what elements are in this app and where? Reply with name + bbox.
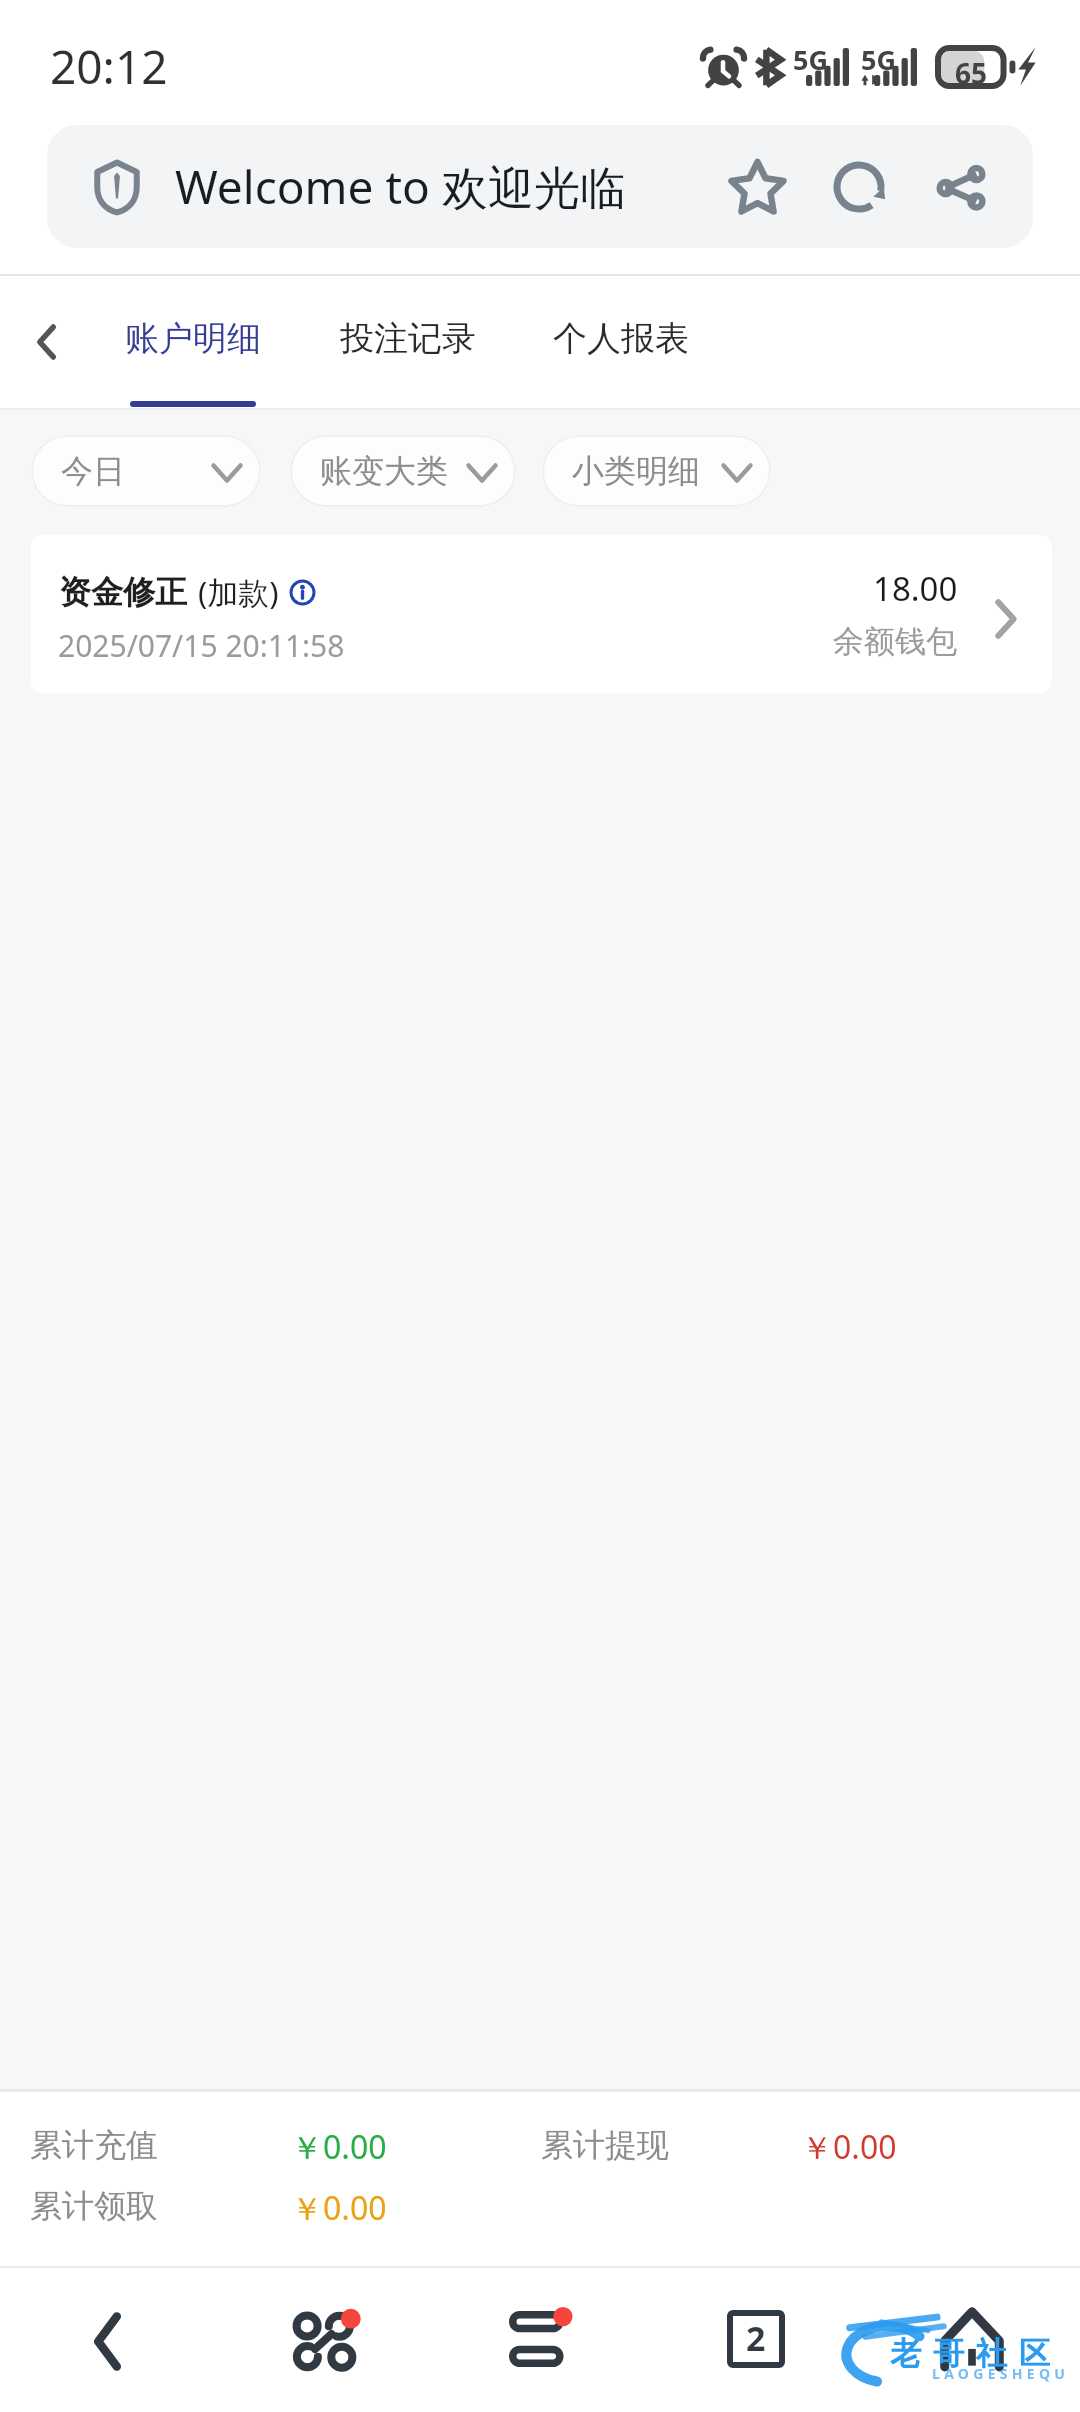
staticText: 65 xyxy=(950,54,992,92)
button[interactable]: 资金修正 xyxy=(31,535,1052,693)
button[interactable]: Share xyxy=(910,125,1012,248)
button[interactable]: 投注记录 xyxy=(327,276,489,408)
staticText: LAOGESHEQU xyxy=(932,2364,1070,2383)
button[interactable]: Tabs xyxy=(666,2266,846,2412)
staticText: 小类明细 xyxy=(572,451,700,491)
staticText: 余额钱包 xyxy=(833,622,957,661)
staticText: 20:12 xyxy=(50,35,168,98)
button[interactable]: 小类明细 xyxy=(542,435,771,507)
staticText: ￥0.00 xyxy=(291,2125,387,2169)
staticText: 累计领取 xyxy=(30,2186,158,2226)
button[interactable]: Welcome to 欢迎光临 xyxy=(47,125,1033,248)
staticText: 账户明细 xyxy=(125,317,261,360)
button[interactable]: Back xyxy=(17,2266,197,2412)
button[interactable]: 账变大类 xyxy=(290,435,516,507)
staticText: 累计充值 xyxy=(30,2125,158,2165)
staticText: 投注记录 xyxy=(340,317,476,360)
staticText: 今日 xyxy=(61,451,125,491)
button[interactable]: 个人报表 xyxy=(540,276,702,408)
staticText: ￥0.00 xyxy=(801,2125,897,2169)
button[interactable]: Menu xyxy=(450,2266,630,2412)
staticText: (加款) xyxy=(198,571,279,613)
button[interactable]: Bookmark xyxy=(706,125,808,248)
staticText: Welcome to 欢迎光临 xyxy=(175,155,626,218)
button[interactable]: Back xyxy=(0,276,94,408)
staticText: 18.00 xyxy=(873,566,958,611)
staticText: 账变大类 xyxy=(320,451,448,491)
staticText: ￥0.00 xyxy=(291,2186,387,2230)
button[interactable]: Home xyxy=(882,2266,1062,2412)
staticText: 2 xyxy=(746,2315,766,2361)
button[interactable]: 账户明细 xyxy=(112,276,274,408)
staticText: 5G xyxy=(793,41,828,78)
staticText: 5G xyxy=(861,41,896,78)
button[interactable]: 今日 xyxy=(31,435,261,507)
staticText: 老哥社区 xyxy=(884,2334,1056,2373)
button[interactable]: Reload xyxy=(808,125,910,248)
staticText: 累计提现 xyxy=(541,2125,669,2165)
staticText: 个人报表 xyxy=(553,317,689,360)
staticText: 资金修正 xyxy=(59,572,187,612)
button[interactable]: Tools xyxy=(236,2266,416,2412)
staticText: 2025/07/15 20:11:58 xyxy=(58,625,345,666)
